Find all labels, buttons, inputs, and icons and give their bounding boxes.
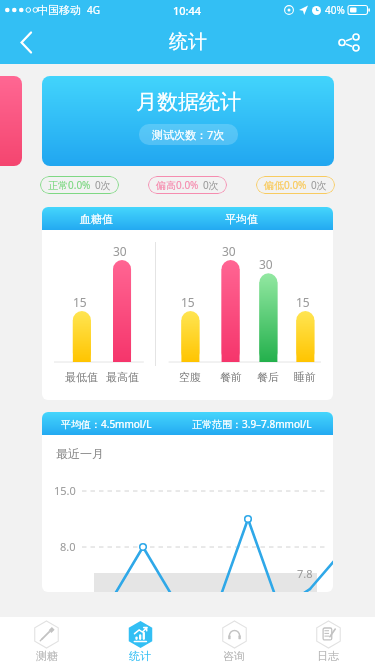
button[interactable]: 血糖值	[42, 207, 333, 400]
staticText: 4G	[87, 3, 100, 17]
button[interactable]: 偏低0.0%	[264, 178, 327, 192]
button[interactable]: 月数据统计	[42, 76, 334, 166]
staticText: 30	[113, 243, 127, 259]
staticText: 统计	[169, 30, 207, 54]
button[interactable]: Back	[0, 20, 52, 64]
staticText: 30	[259, 256, 273, 272]
staticText: 40%	[325, 3, 345, 17]
button[interactable]: Share	[323, 20, 375, 64]
staticText: 测试次数：7次	[152, 127, 225, 142]
staticText: 15	[73, 294, 87, 310]
button[interactable]	[0, 76, 22, 166]
staticText: 30	[222, 243, 236, 259]
staticText: 0次	[95, 178, 111, 192]
staticText: 正常0.0%	[48, 178, 91, 192]
staticText: 0次	[311, 178, 327, 192]
staticText: 平均值	[225, 212, 258, 226]
staticText: 15	[296, 294, 310, 310]
staticText: 偏低0.0%	[264, 178, 307, 192]
staticText: 15.0	[54, 483, 76, 498]
staticText: 最近一月	[56, 446, 104, 461]
staticText: 餐后	[257, 370, 279, 384]
staticText: 咨询	[223, 649, 245, 663]
button[interactable]: 正常0.0%	[48, 178, 111, 192]
staticText: 最低值	[65, 370, 98, 384]
staticText: 统计	[129, 649, 151, 663]
staticText: 8.0	[60, 539, 76, 554]
staticText: 睡前	[294, 370, 316, 384]
staticText: 正常范围：3.9–7.8mmol/L	[192, 417, 312, 431]
staticText: 月数据统计	[136, 89, 241, 115]
button[interactable]: 咨询	[187, 617, 281, 667]
button[interactable]: 偏高0.0%	[156, 178, 219, 192]
staticText: 餐前	[220, 370, 242, 384]
staticText: 最高值	[106, 370, 139, 384]
staticText: 血糖值	[80, 212, 113, 226]
button[interactable]: 平均值：4.5mmol/L	[42, 412, 333, 592]
staticText: 0次	[203, 178, 219, 192]
staticText: 15	[181, 294, 195, 310]
staticText: 偏高0.0%	[156, 178, 199, 192]
button[interactable]: 统计	[93, 617, 187, 667]
staticText: 平均值：4.5mmol/L	[61, 417, 152, 431]
button[interactable]: 日志	[281, 617, 375, 667]
staticText: 7.8	[297, 566, 313, 581]
staticText: 测糖	[36, 649, 58, 663]
button[interactable]: 测糖	[0, 617, 93, 667]
staticText: 中国移动	[37, 3, 81, 17]
staticText: 空腹	[179, 370, 201, 384]
staticText: 10:44	[173, 3, 202, 18]
staticText: 日志	[317, 649, 339, 663]
